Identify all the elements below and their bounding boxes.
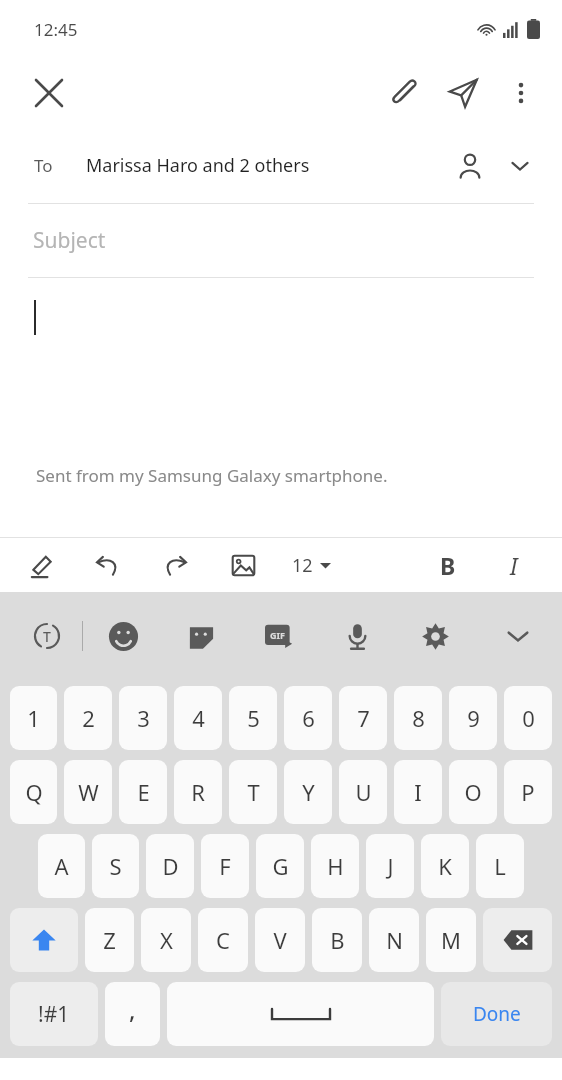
button[interactable]: H [311,834,359,898]
button[interactable]: Done [441,982,552,1046]
staticText: Subject [33,226,106,255]
staticText: 6 [302,703,315,733]
staticText: 7 [357,703,370,733]
staticText: 2 [82,703,95,733]
button[interactable]: Space [167,982,434,1046]
button[interactable]: Insert image [220,542,266,588]
button[interactable]: Close [20,64,78,122]
button[interactable]: B [424,541,472,589]
staticText: Y [302,777,315,807]
staticText: 0 [522,703,535,733]
staticText: 4 [192,703,205,733]
button[interactable]: B [312,908,362,972]
button[interactable]: V [255,908,305,972]
staticText: W [78,777,99,807]
button[interactable]: J [366,834,414,898]
button[interactable]: T [229,760,277,824]
button[interactable]: Translate [22,611,72,661]
button[interactable]: Highlight [18,542,64,588]
staticText: 5 [247,703,260,733]
button[interactable]: Backspace [483,908,552,972]
staticText: Sent from my Samsung Galaxy smartphone. [36,464,388,487]
button[interactable]: , [105,982,160,1046]
button[interactable]: Undo [84,542,130,588]
button[interactable]: Z [85,908,134,972]
staticText: V [273,925,287,955]
staticText: To [34,154,53,177]
button[interactable]: Q [10,760,57,824]
button[interactable]: I [394,760,442,824]
staticText: !#1 [38,1000,70,1029]
staticText: K [438,851,452,881]
button[interactable]: P [504,760,552,824]
button[interactable]: !#1 [10,982,98,1046]
button[interactable]: Y [284,760,332,824]
button[interactable]: R [174,760,222,824]
button[interactable]: 7 [339,686,387,750]
button[interactable]: A [38,834,85,898]
button[interactable]: 2 [64,686,112,750]
staticText: Z [103,925,116,955]
button[interactable]: Sent from my Samsung Galaxy smartphone. [0,278,562,537]
button[interactable]: Send [434,64,492,122]
staticText: 1 [27,703,40,733]
staticText: T [43,627,51,646]
button[interactable]: S [92,834,139,898]
staticText: , [129,993,136,1026]
staticText: P [521,777,535,807]
button[interactable]: X [141,908,191,972]
button[interactable]: 12 [288,542,335,588]
button[interactable]: More options [492,64,550,122]
button[interactable]: W [64,760,112,824]
button[interactable]: Expand recipients [496,140,544,192]
button[interactable]: D [146,834,194,898]
staticText: S [109,851,122,881]
button[interactable]: K [421,834,469,898]
staticText: O [464,777,482,807]
staticText: 12:45 [34,18,78,41]
button[interactable]: L [476,834,524,898]
staticText: H [327,851,344,881]
button[interactable]: Subject [0,204,562,277]
button[interactable]: To [0,128,562,203]
button[interactable]: 1 [10,686,57,750]
button[interactable]: U [339,760,387,824]
button[interactable]: G [256,834,304,898]
button[interactable]: Add contact [444,140,496,192]
button[interactable]: 3 [119,686,167,750]
button[interactable]: N [369,908,419,972]
button[interactable]: 0 [504,686,552,750]
button[interactable]: Voice input [331,610,383,662]
staticText: U [355,777,372,807]
button[interactable]: 5 [229,686,277,750]
staticText: B [330,925,345,955]
button[interactable]: F [201,834,249,898]
button[interactable]: Stickers [175,610,227,662]
button[interactable]: Attach [376,64,434,122]
staticText: T [247,777,260,807]
staticText: I [510,550,518,581]
button[interactable]: Emoji [97,610,149,662]
button[interactable]: O [449,760,497,824]
button[interactable]: Keyboard settings [409,610,461,662]
button[interactable]: 8 [394,686,442,750]
staticText: I [414,777,422,807]
button[interactable]: 4 [174,686,222,750]
button[interactable]: 6 [284,686,332,750]
button[interactable]: Redo [152,542,198,588]
staticText: M [441,925,461,955]
button[interactable]: Hide keyboard [492,610,544,662]
button[interactable]: E [119,760,167,824]
staticText: N [386,925,403,955]
button[interactable]: 9 [449,686,497,750]
button[interactable]: C [198,908,248,972]
staticText: L [494,851,506,881]
button[interactable]: I [490,541,538,589]
staticText: GIF [270,629,285,641]
button[interactable]: GIF [253,610,305,662]
staticText: 12 [292,553,313,578]
staticText: 3 [137,703,150,733]
staticText: X [160,925,173,955]
button[interactable]: Shift [10,908,78,972]
button[interactable]: M [426,908,476,972]
